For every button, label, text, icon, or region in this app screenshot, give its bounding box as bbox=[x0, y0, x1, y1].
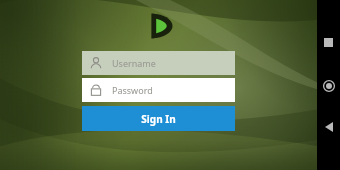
button[interactable]: Sign In bbox=[82, 106, 235, 131]
button[interactable]: Username bbox=[82, 51, 235, 75]
staticText: Password bbox=[112, 84, 153, 96]
staticText: Username bbox=[112, 57, 156, 69]
button[interactable]: Home bbox=[317, 74, 340, 97]
button[interactable]: Recents bbox=[317, 31, 340, 54]
staticText: Sign In bbox=[141, 112, 176, 126]
button[interactable]: Password bbox=[82, 78, 235, 102]
button[interactable]: Back bbox=[317, 115, 340, 138]
